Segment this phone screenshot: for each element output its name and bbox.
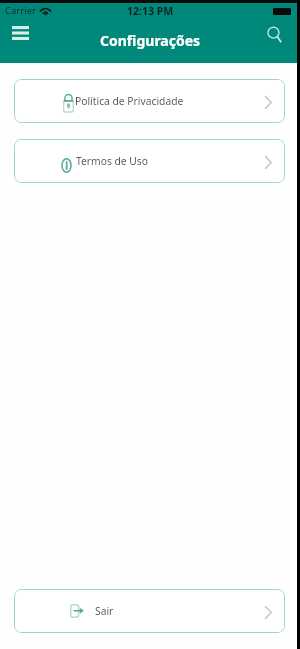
staticText: Termos de Uso	[76, 154, 149, 168]
staticText: 12:13 PM	[127, 4, 174, 18]
staticText: Política de Privacidade	[75, 94, 184, 108]
button[interactable]: Sair	[14, 589, 285, 633]
button[interactable]: Política de Privacidade	[14, 79, 285, 123]
staticText: Carrier	[5, 4, 36, 17]
staticText: Configurações	[100, 31, 201, 50]
button[interactable]: Menu	[5, 18, 35, 48]
staticText: Sair	[95, 604, 114, 618]
button[interactable]: Search	[259, 19, 289, 49]
button[interactable]: Termos de Uso	[14, 139, 285, 183]
